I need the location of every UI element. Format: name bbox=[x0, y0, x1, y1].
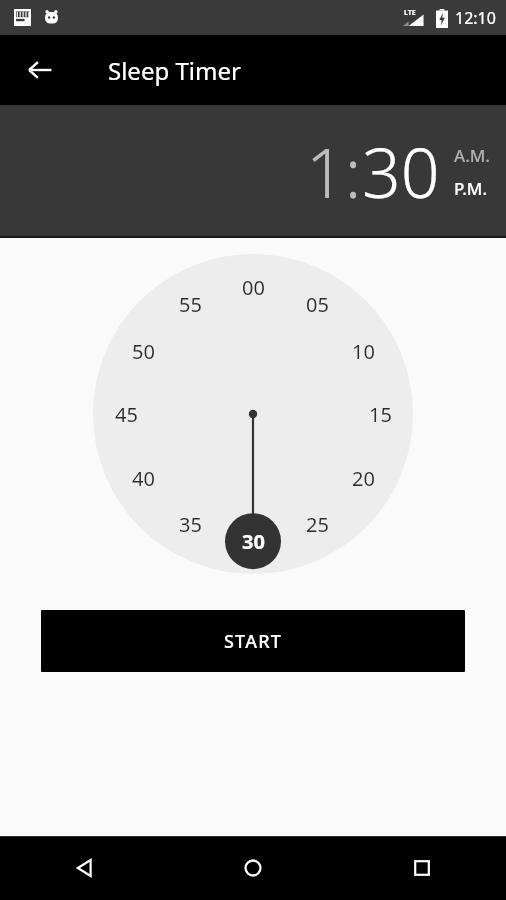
button[interactable]: P.M. bbox=[454, 177, 488, 200]
staticText: 55 bbox=[179, 291, 202, 318]
staticText: 15 bbox=[369, 401, 392, 428]
staticText: 20 bbox=[352, 465, 375, 492]
button[interactable]: A.M. bbox=[454, 144, 490, 167]
staticText: 05 bbox=[306, 291, 329, 318]
staticText: 45 bbox=[115, 401, 138, 428]
staticText: 10 bbox=[352, 338, 375, 365]
staticText: 1: bbox=[306, 125, 362, 218]
staticText: 00 bbox=[242, 274, 265, 301]
staticText: START bbox=[224, 629, 283, 654]
staticText: 12:10 bbox=[455, 7, 496, 29]
staticText: 35 bbox=[179, 511, 202, 538]
staticText: 40 bbox=[132, 465, 155, 492]
button[interactable]: START bbox=[41, 610, 465, 672]
staticText: LTE bbox=[404, 8, 416, 18]
staticText: 25 bbox=[306, 511, 329, 538]
staticText: 30 bbox=[242, 528, 265, 555]
staticText: A.M. bbox=[454, 144, 490, 167]
staticText: 30 bbox=[362, 125, 440, 218]
button[interactable]: 00 bbox=[93, 254, 413, 574]
staticText: Sleep Timer bbox=[108, 54, 241, 87]
button[interactable]: 30 bbox=[362, 125, 440, 218]
button[interactable]: Recent apps bbox=[337, 836, 506, 900]
staticText: P.M. bbox=[454, 177, 488, 200]
button[interactable]: Back bbox=[16, 46, 64, 94]
staticText: 50 bbox=[132, 338, 155, 365]
button[interactable]: Back bbox=[0, 836, 168, 900]
button[interactable]: 1: bbox=[306, 125, 362, 218]
button[interactable]: Home bbox=[168, 836, 337, 900]
